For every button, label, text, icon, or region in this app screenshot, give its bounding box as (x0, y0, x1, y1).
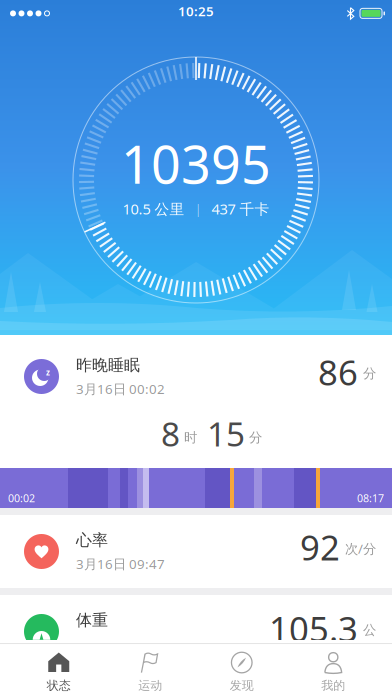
staticText: 体重 (76, 610, 108, 630)
button[interactable]: 发现 (196, 644, 287, 693)
staticText: 08:17 (357, 491, 384, 505)
staticText: 10395 (121, 129, 271, 198)
button[interactable]: 心率 (0, 515, 392, 588)
staticText: 10.5 公里 (122, 199, 184, 218)
button[interactable]: 状态 (13, 644, 104, 693)
staticText: z (46, 367, 50, 378)
staticText: 时 (184, 429, 197, 446)
staticText (76, 635, 79, 653)
staticText: 心率 (76, 530, 108, 550)
staticText: 我的 (321, 678, 345, 693)
staticText: 15 (207, 411, 245, 456)
staticText: 运动 (138, 678, 162, 693)
staticText: 3月16日 00:02 (76, 380, 165, 398)
staticText: | (194, 200, 201, 218)
staticText: 公 (363, 622, 376, 638)
button[interactable]: 我的 (287, 644, 379, 693)
staticText: 发现 (230, 678, 254, 693)
staticText: 昨晚睡眠 (76, 355, 140, 375)
staticText: 8 (161, 411, 180, 456)
button[interactable]: z (0, 335, 392, 508)
staticText: 3月16日 09:47 (76, 555, 165, 573)
staticText: 437 千卡 (211, 199, 269, 218)
button[interactable]: 运动 (104, 644, 196, 693)
staticText: 105.3 (269, 605, 358, 651)
staticText: 92 (300, 524, 340, 570)
staticText: 状态 (47, 678, 71, 693)
staticText: 分 (249, 429, 262, 446)
button[interactable]: 体重 (0, 595, 392, 668)
staticText: 10:25 (178, 2, 214, 20)
staticText: 分 (363, 365, 376, 382)
staticText: 86 (318, 349, 358, 395)
staticText: 次/分 (345, 540, 376, 557)
staticText: 00:02 (8, 491, 35, 505)
